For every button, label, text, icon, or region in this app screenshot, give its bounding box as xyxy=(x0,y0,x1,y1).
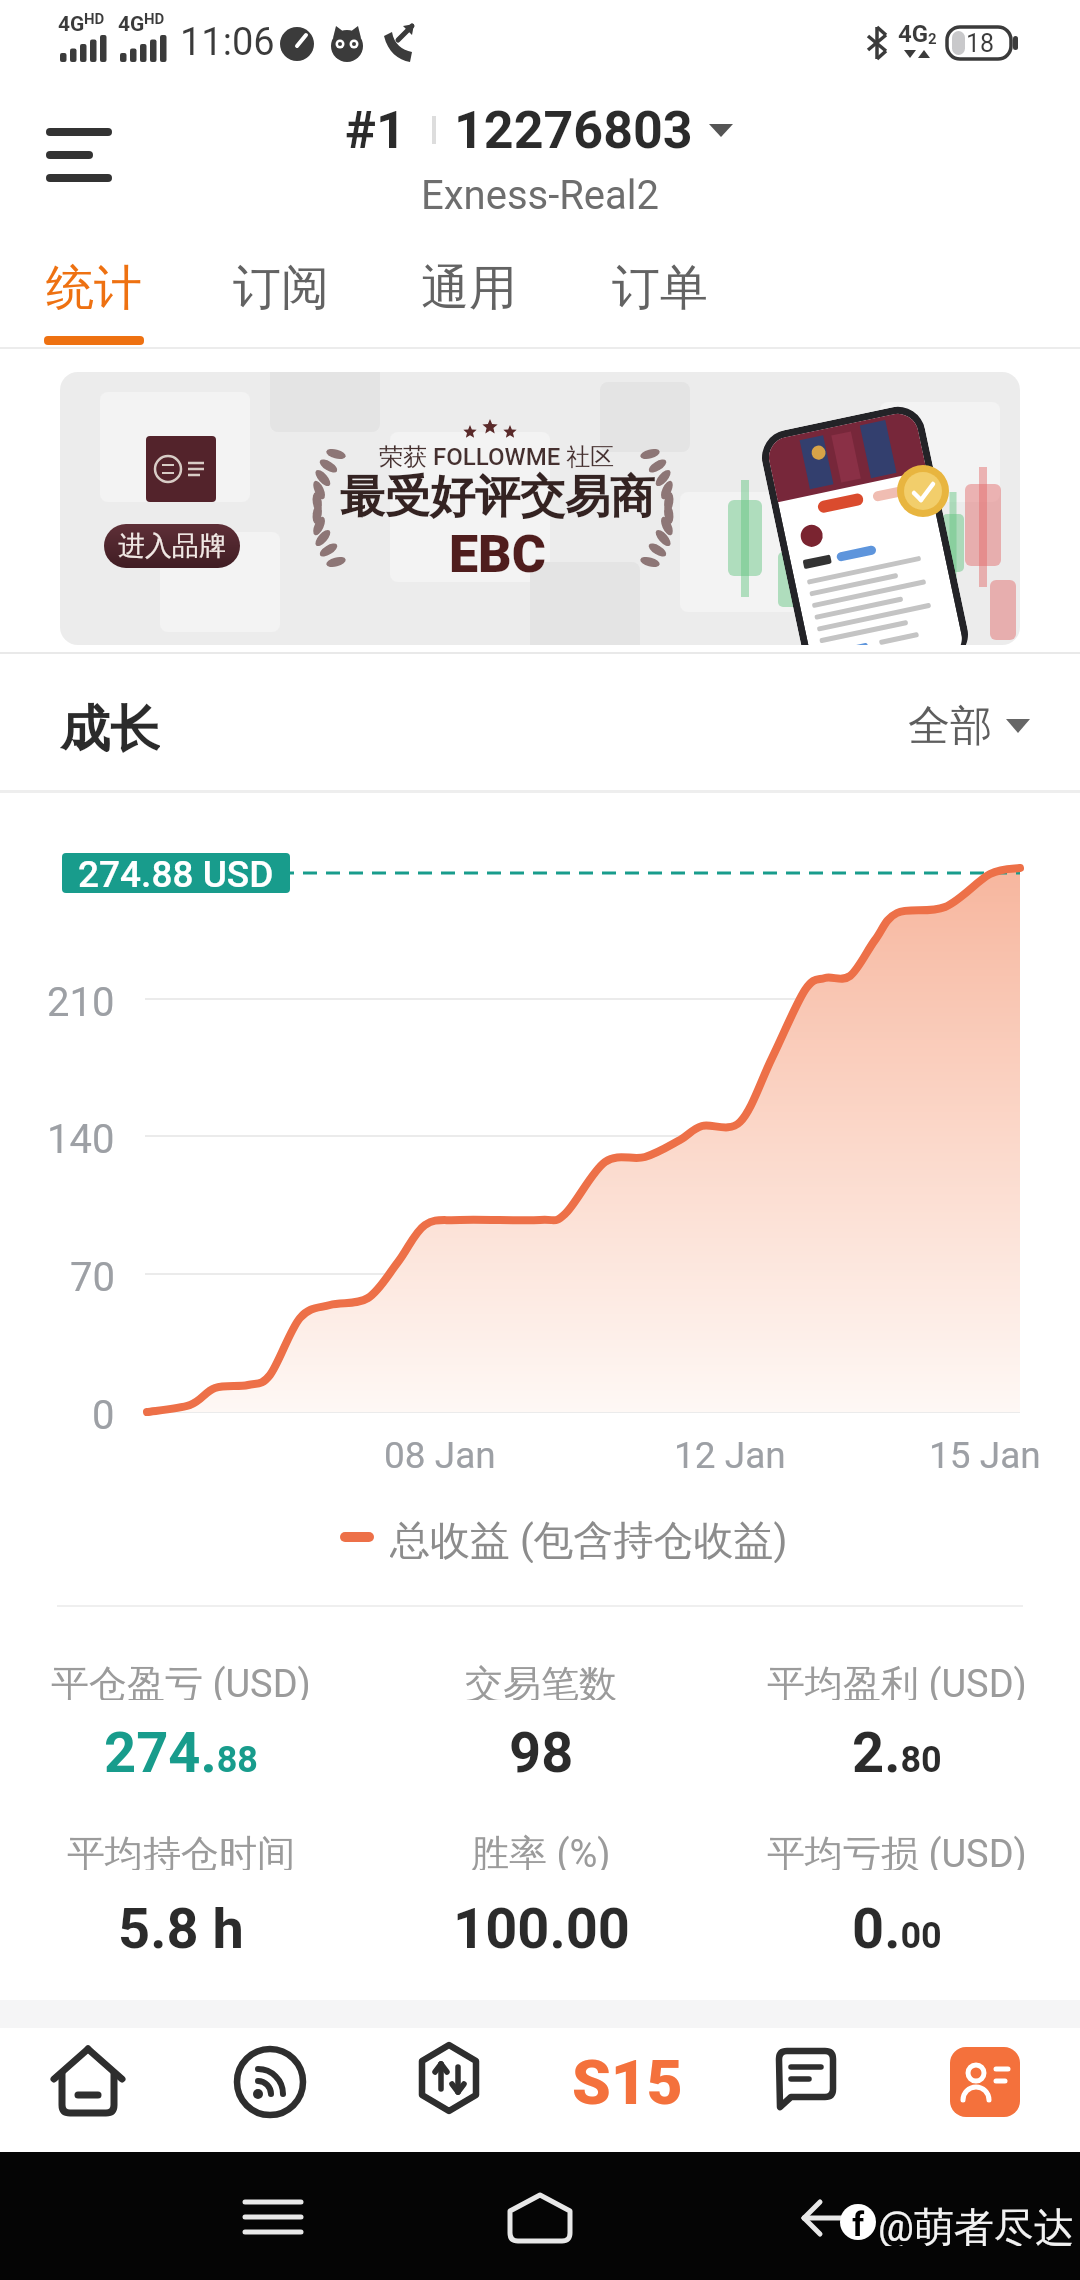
staticText: 5.8 h xyxy=(118,1896,244,1960)
staticText: 18 xyxy=(966,29,995,58)
staticText: 统计 xyxy=(46,258,142,310)
staticText: HD xyxy=(84,10,105,28)
staticText: 订阅 xyxy=(233,258,329,310)
button[interactable]: 订阅 xyxy=(231,258,331,310)
staticText: 11:06 xyxy=(180,20,275,64)
staticText: 4G xyxy=(898,20,929,46)
button[interactable] xyxy=(950,2047,1020,2117)
button[interactable]: #1 xyxy=(340,98,740,162)
button[interactable] xyxy=(225,2037,315,2127)
staticText: 最受好评交易商 xyxy=(340,469,655,519)
button[interactable] xyxy=(43,2037,133,2127)
staticText: HD xyxy=(144,10,165,28)
staticText: EBC xyxy=(449,524,546,578)
staticText: 交易笔数 xyxy=(465,1660,617,1700)
staticText: 2 xyxy=(928,30,937,48)
button[interactable] xyxy=(790,2190,870,2250)
button[interactable] xyxy=(404,2037,494,2127)
staticText: 平均盈利 (USD) xyxy=(767,1660,1027,1700)
staticText: 平仓盈亏 (USD) xyxy=(51,1660,311,1700)
button[interactable] xyxy=(230,2185,316,2251)
staticText: 0 xyxy=(92,1392,115,1436)
staticText: 进入品牌 xyxy=(118,529,226,563)
button[interactable]: 进入品牌 xyxy=(60,372,1020,645)
button[interactable] xyxy=(761,2037,851,2127)
button[interactable]: 统计 xyxy=(44,258,144,310)
staticText: 12276803 xyxy=(454,100,693,161)
button[interactable]: 订单 xyxy=(610,258,710,310)
staticText: 胜率 (%) xyxy=(471,1830,611,1870)
staticText: 0.00 xyxy=(852,1896,942,1960)
staticText: 70 xyxy=(70,1254,115,1298)
staticText: 210 xyxy=(47,979,115,1023)
staticText: @萌者尽达 xyxy=(878,2202,1074,2246)
staticText: 15 Jan xyxy=(929,1434,1041,1477)
staticText: 平均亏损 (USD) xyxy=(767,1830,1027,1870)
staticText: S15 xyxy=(572,2046,683,2119)
button[interactable] xyxy=(500,2185,580,2251)
button[interactable] xyxy=(40,118,120,190)
staticText: 4G xyxy=(118,12,145,36)
staticText: 荣获 FOLLOWME 社区 xyxy=(379,442,615,472)
button[interactable]: S15 xyxy=(570,2042,685,2122)
staticText: 平均持仓时间 xyxy=(67,1830,295,1870)
staticText: 全部 xyxy=(908,700,992,752)
button[interactable]: 全部 xyxy=(880,700,1030,752)
staticText: 通用 xyxy=(421,258,517,310)
staticText: 98 xyxy=(509,1720,574,1784)
staticText: 08 Jan xyxy=(384,1434,496,1477)
staticText: 140 xyxy=(47,1116,115,1160)
staticText: f xyxy=(852,2204,865,2240)
button[interactable]: 进入品牌 xyxy=(104,524,240,568)
staticText: 总收益 (包含持仓收益) xyxy=(390,1515,788,1563)
staticText: 274.88 USD xyxy=(78,853,274,893)
staticText: 274.88 xyxy=(104,1720,258,1784)
staticText: 100.00 xyxy=(453,1896,630,1960)
staticText: 成长 xyxy=(60,698,160,754)
button[interactable]: 通用 xyxy=(419,258,519,310)
staticText: 12 Jan xyxy=(674,1434,786,1477)
staticText: #1 xyxy=(345,100,406,161)
staticText: Exness-Real2 xyxy=(421,172,660,216)
staticText: 订单 xyxy=(612,258,708,310)
staticText: 4G xyxy=(58,12,85,36)
staticText: 2.80 xyxy=(852,1720,942,1784)
